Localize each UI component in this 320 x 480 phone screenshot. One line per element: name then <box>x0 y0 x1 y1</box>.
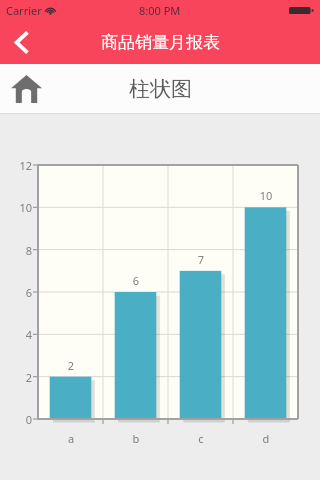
staticText: 2 <box>51 358 91 373</box>
staticText: 8 <box>6 243 32 258</box>
staticText: 8:00 PM <box>139 3 181 18</box>
staticText: 12 <box>6 158 32 173</box>
staticText: 柱状图 <box>129 76 192 102</box>
staticText: 6 <box>6 285 32 300</box>
staticText: b <box>116 431 156 446</box>
staticText: Carrier <box>6 3 42 18</box>
button[interactable]: Back <box>0 20 44 64</box>
staticText: 4 <box>6 327 32 342</box>
staticText: 2 <box>6 370 32 385</box>
staticText: c <box>181 431 221 446</box>
staticText: 10 <box>246 188 286 203</box>
staticText: 6 <box>116 273 156 288</box>
staticText: 0 <box>6 412 32 427</box>
staticText: a <box>51 431 91 446</box>
staticText: 7 <box>181 252 221 267</box>
staticText: d <box>246 431 286 446</box>
staticText: 商品销量月报表 <box>101 32 220 53</box>
button[interactable]: Home <box>3 66 49 112</box>
staticText: 10 <box>6 200 32 215</box>
